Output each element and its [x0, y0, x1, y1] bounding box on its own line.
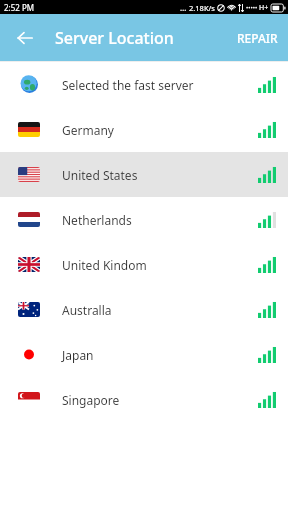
staticText: Germany [62, 122, 258, 138]
button[interactable]: United Kindom [0, 242, 288, 287]
staticText: United Kindom [62, 257, 258, 273]
button[interactable]: United States [0, 152, 288, 197]
button[interactable]: Singapore [0, 377, 288, 422]
button[interactable]: Back [8, 21, 42, 55]
button[interactable]: Germany [0, 107, 288, 152]
staticText: … [180, 2, 187, 13]
button[interactable]: Netherlands [0, 197, 288, 242]
staticText: Singapore [62, 392, 258, 408]
staticText: Japan [62, 347, 258, 363]
staticText: REPAIR [237, 30, 278, 46]
button[interactable]: REPAIR [227, 22, 288, 54]
button[interactable]: Selected the fast server [0, 62, 288, 107]
staticText: 2.18K/s [189, 3, 215, 13]
staticText: Server Location [55, 27, 174, 49]
staticText: ••••• [246, 4, 258, 12]
staticText: Australla [62, 302, 258, 318]
button[interactable]: Australla [0, 287, 288, 332]
button[interactable]: Japan [0, 332, 288, 377]
staticText: United States [62, 167, 258, 183]
staticText: Selected the fast server [62, 77, 258, 93]
staticText: H+ [259, 3, 269, 13]
staticText: Netherlands [62, 212, 258, 228]
staticText: 2:52 PM [4, 2, 35, 13]
